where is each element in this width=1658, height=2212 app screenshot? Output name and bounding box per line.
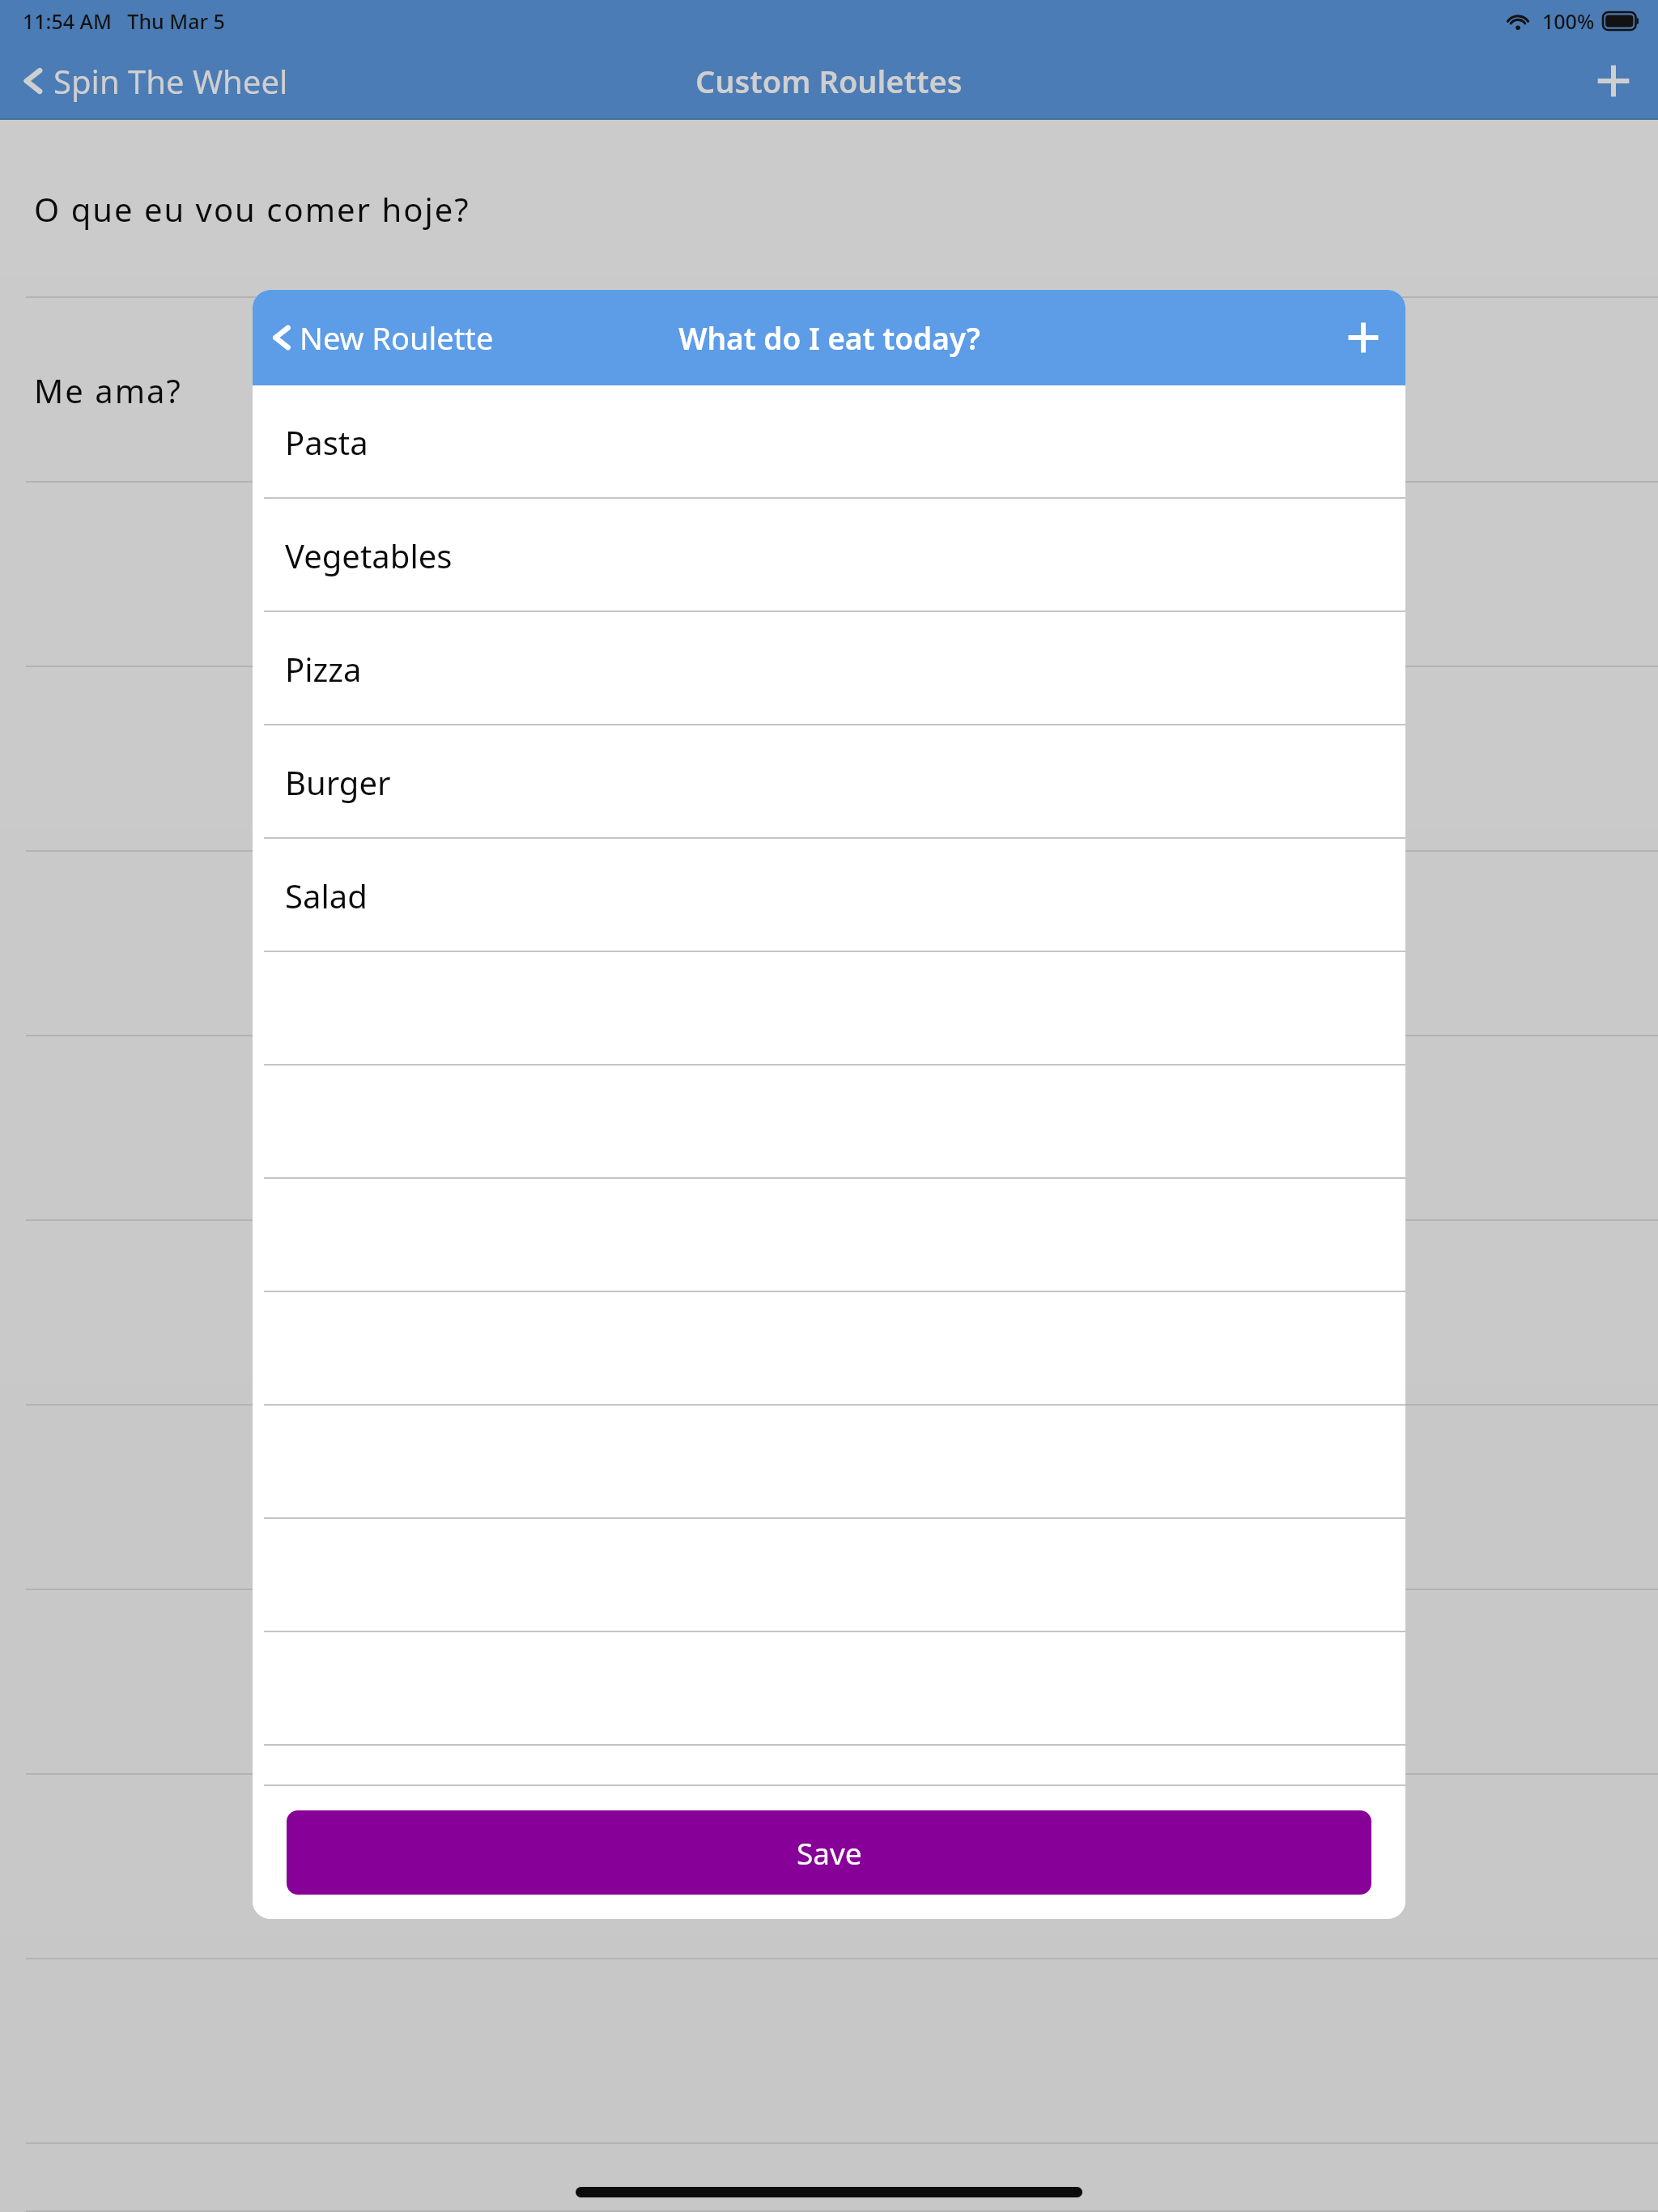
staticText: 100% <box>1542 7 1595 35</box>
staticText: Pizza <box>285 647 362 691</box>
staticText: What do I eat today? <box>678 317 980 358</box>
button[interactable] <box>0 1590 1658 1775</box>
staticText: O que eu vou comer hoje? <box>34 187 470 231</box>
staticText: Save <box>797 1832 862 1873</box>
button[interactable]: Add roulette <box>1569 42 1658 120</box>
staticText: Salad <box>285 874 368 917</box>
button[interactable]: Salad <box>253 839 1405 952</box>
staticText: Pasta <box>285 420 368 464</box>
button[interactable]: New Roulette <box>253 290 508 385</box>
button[interactable]: Vegetables <box>253 499 1405 612</box>
button[interactable] <box>253 1179 1405 1292</box>
button[interactable] <box>253 1519 1405 1632</box>
button[interactable]: O que eu vou comer hoje? <box>0 120 1658 298</box>
staticText: New Roulette <box>300 317 494 359</box>
button[interactable] <box>0 667 1658 852</box>
button[interactable] <box>0 1406 1658 1590</box>
staticText: Spin The Wheel <box>53 59 288 103</box>
button[interactable] <box>253 952 1405 1066</box>
staticText: 11:54 AM Thu Mar 5 <box>23 7 225 35</box>
staticText: Custom Roulettes <box>695 60 963 102</box>
button[interactable] <box>253 1406 1405 1519</box>
button[interactable] <box>0 2144 1658 2212</box>
button[interactable] <box>253 1292 1405 1406</box>
staticText: Burger <box>285 760 391 804</box>
button[interactable]: Spin The Wheel <box>0 42 304 120</box>
button[interactable]: Burger <box>253 725 1405 839</box>
button[interactable] <box>0 1221 1658 1406</box>
button[interactable]: Add option <box>1321 290 1405 385</box>
button[interactable]: Pizza <box>253 612 1405 725</box>
button[interactable] <box>0 1775 1658 1959</box>
button[interactable]: Save <box>287 1810 1371 1895</box>
button[interactable] <box>253 1632 1405 1746</box>
staticText: Me ama? <box>34 368 182 412</box>
button[interactable]: Pasta <box>253 385 1405 499</box>
staticText: Vegetables <box>285 534 453 577</box>
button[interactable] <box>0 483 1658 667</box>
button[interactable] <box>253 1746 1405 1786</box>
button[interactable] <box>0 1036 1658 1221</box>
button[interactable]: Me ama? <box>0 298 1658 483</box>
button[interactable] <box>0 852 1658 1036</box>
button[interactable] <box>253 1066 1405 1179</box>
